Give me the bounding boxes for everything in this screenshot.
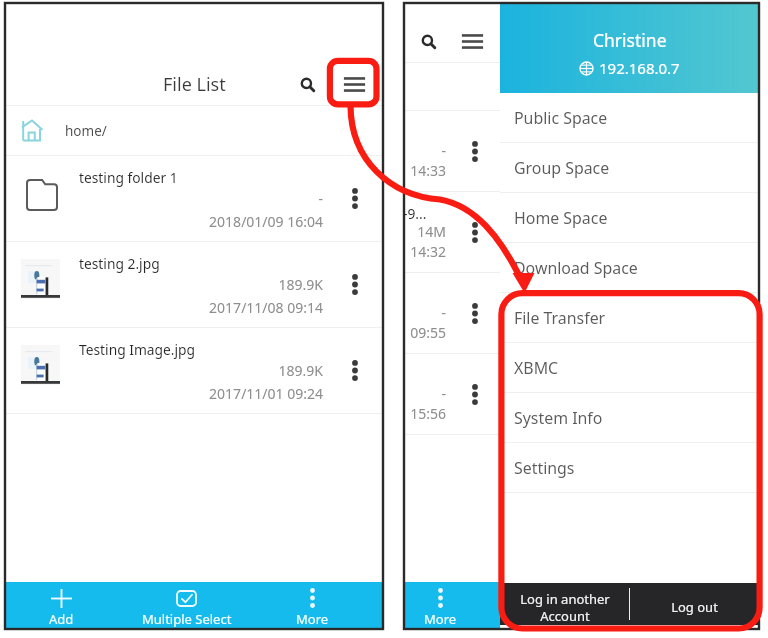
button[interactable]: More options <box>323 328 383 413</box>
button[interactable]: Search <box>411 19 447 64</box>
staticText: 192.168.0.7 <box>599 58 680 78</box>
button[interactable]: Multiple Select <box>124 582 249 629</box>
button[interactable]: Settings <box>500 443 759 492</box>
staticText: 14:33 <box>407 161 446 180</box>
staticText: Public Space <box>514 107 608 129</box>
staticText: testing folder 1 <box>79 168 178 187</box>
staticText: 189.9K <box>79 361 323 380</box>
staticText: Log out <box>671 598 718 616</box>
button[interactable]: Open navigation menu <box>451 19 493 64</box>
staticText: 14:32 <box>407 242 446 261</box>
button[interactable]: Public Space <box>500 93 759 142</box>
staticText: - <box>407 303 446 322</box>
staticText: More <box>296 610 329 628</box>
staticText: 15:56 <box>407 404 446 423</box>
staticText: XBMC <box>514 357 559 379</box>
staticText: Multiple Select <box>142 610 232 628</box>
button[interactable]: Group Space <box>500 143 759 192</box>
staticText: - <box>407 384 446 403</box>
staticText: 2018/01/09 16:04 <box>79 212 323 231</box>
button[interactable]: Download Space <box>500 243 759 292</box>
staticText: File Transfer <box>514 307 606 329</box>
staticText: Log in another Account <box>520 590 610 625</box>
staticText: 189.9K <box>79 275 323 294</box>
button[interactable]: Log out <box>630 583 759 625</box>
staticText: 2017/11/08 09:14 <box>79 298 323 317</box>
button[interactable]: - <box>404 354 500 434</box>
staticText: 09:55 <box>407 323 446 342</box>
staticText: - <box>407 141 446 160</box>
staticText: Testing Image.jpg <box>79 340 196 359</box>
staticText: More <box>424 610 457 628</box>
staticText: Group Space <box>514 157 610 179</box>
button[interactable]: home/ <box>5 106 383 155</box>
staticText: File List <box>163 72 226 97</box>
staticText: Home Space <box>514 207 608 229</box>
staticText: 14M <box>407 222 446 241</box>
button[interactable]: Testing Image.jpg <box>5 328 383 413</box>
button[interactable]: Search <box>290 62 326 107</box>
button[interactable]: - <box>404 273 500 353</box>
button[interactable]: Open navigation menu <box>333 62 375 107</box>
button[interactable]: - <box>404 111 500 191</box>
staticText: Settings <box>514 457 575 479</box>
button[interactable]: Home Space <box>500 193 759 242</box>
button[interactable]: More <box>250 582 375 629</box>
staticText: testing 2.jpg <box>79 254 160 273</box>
button[interactable]: More options <box>323 156 383 241</box>
button[interactable]: testing 2.jpg <box>5 242 383 327</box>
button[interactable]: System Info <box>500 393 759 442</box>
staticText: Download Space <box>514 257 638 279</box>
staticText: - <box>79 189 323 208</box>
button[interactable]: Add <box>0 582 124 629</box>
staticText: 2017/11/01 09:24 <box>79 384 323 403</box>
button[interactable]: -9... <box>404 192 500 272</box>
staticText: -9... <box>403 204 427 223</box>
button[interactable]: More options <box>323 242 383 327</box>
staticText: System Info <box>514 407 603 429</box>
staticText: Add <box>49 610 74 628</box>
button[interactable]: More <box>405 582 475 629</box>
button[interactable]: File List <box>163 62 226 107</box>
staticText: home/ <box>65 122 107 140</box>
staticText: Christine <box>593 28 667 52</box>
button[interactable]: Log in another Account <box>500 583 629 625</box>
button[interactable]: XBMC <box>500 343 759 392</box>
button[interactable]: testing folder 1 <box>5 156 383 241</box>
button[interactable]: File Transfer <box>500 293 759 342</box>
